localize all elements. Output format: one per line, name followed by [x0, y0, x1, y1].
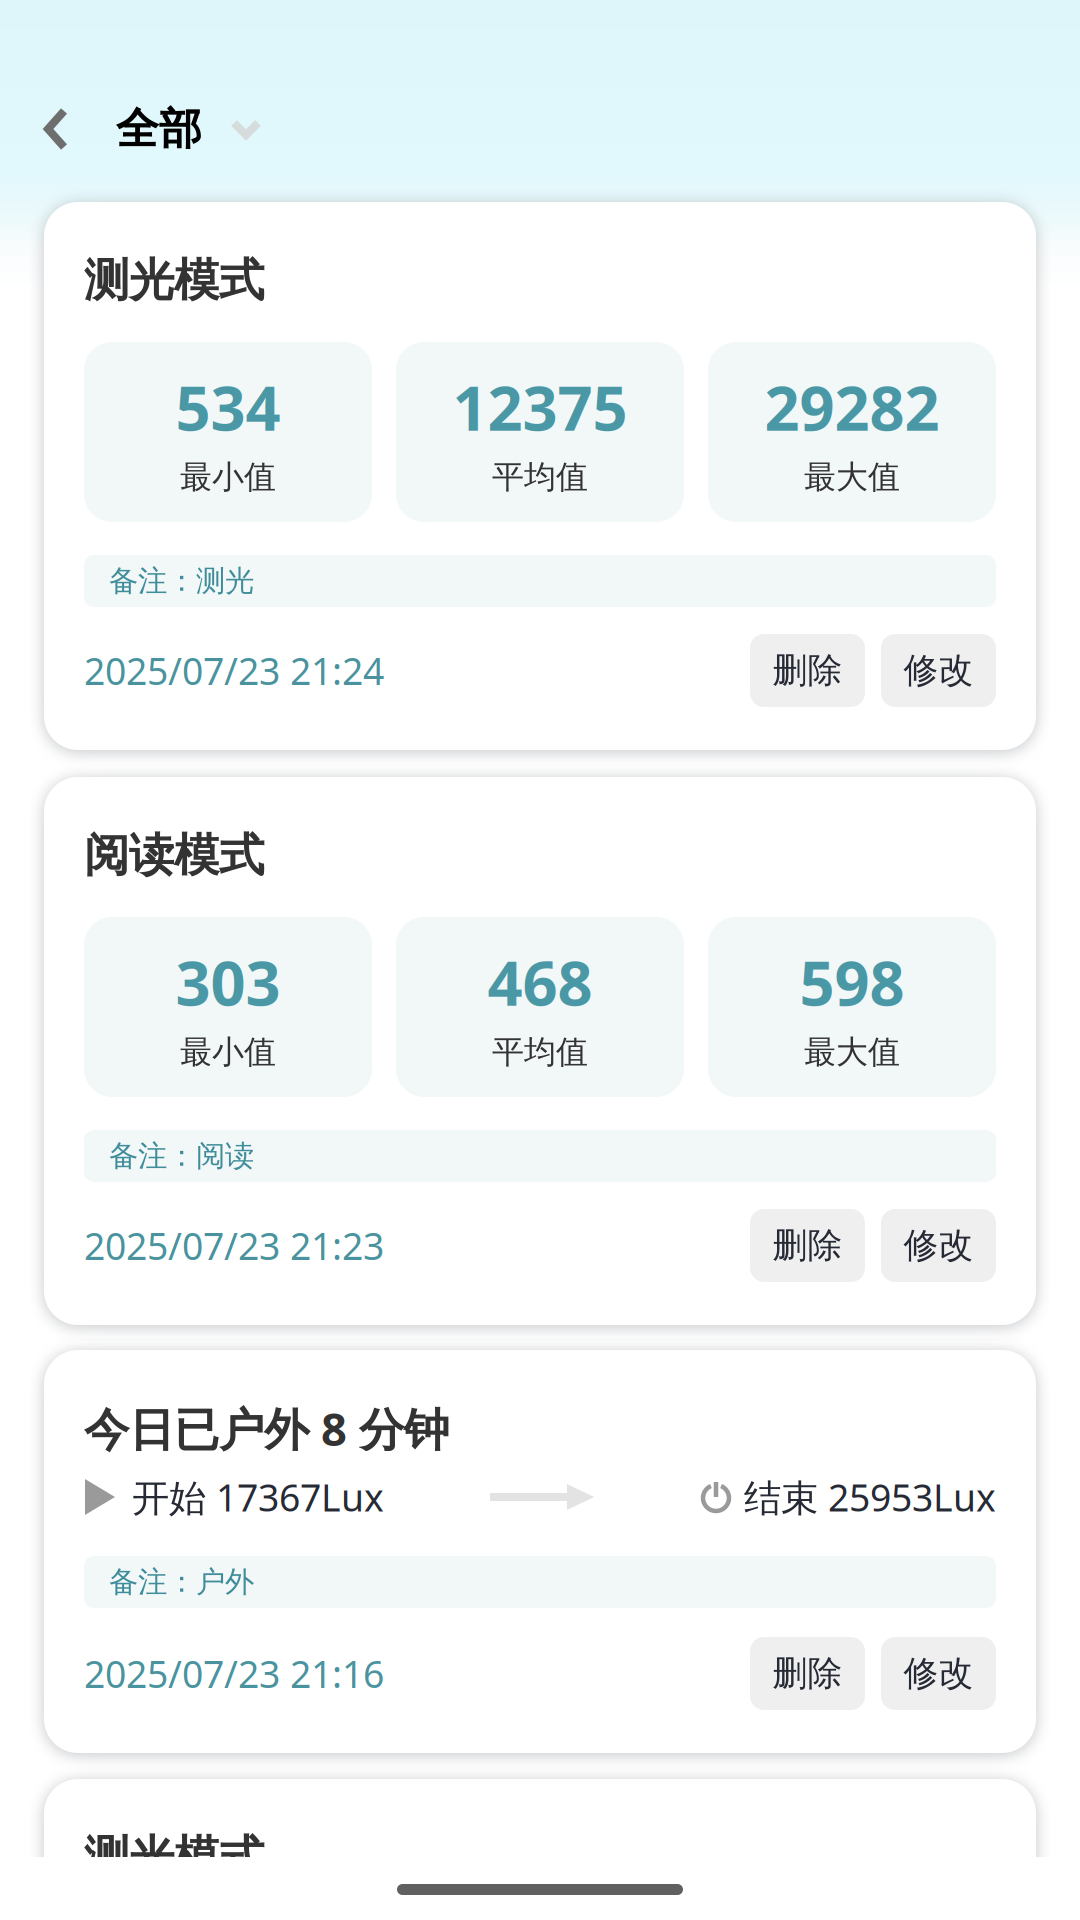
button[interactable]: 全部	[116, 81, 262, 177]
button[interactable]: 删除	[750, 634, 865, 707]
staticText: 最小值	[180, 1032, 276, 1072]
staticText: 534	[175, 366, 280, 448]
staticText: 备注：户外	[109, 1564, 254, 1600]
staticText: 结束 25953Lux	[744, 1472, 996, 1522]
staticText: 29282	[764, 366, 939, 448]
staticText: 468	[487, 941, 592, 1023]
staticText: 今日已户外 8 分钟	[84, 1398, 449, 1459]
staticText: 最大值	[804, 1032, 900, 1072]
staticText: 删除	[772, 1652, 842, 1695]
staticText: 2025/07/23 21:24	[84, 646, 384, 695]
staticText: 全部	[116, 103, 202, 155]
staticText: 删除	[772, 649, 842, 692]
staticText: 303	[175, 941, 280, 1023]
button[interactable]: 修改	[881, 1637, 996, 1710]
staticText: 598	[799, 941, 904, 1023]
button[interactable]: 删除	[750, 1209, 865, 1282]
staticText: 阅读模式	[84, 828, 264, 883]
staticText: 备注：测光	[109, 563, 254, 599]
button[interactable]: Back	[44, 81, 116, 177]
staticText: 平均值	[492, 457, 588, 497]
button[interactable]: 修改	[881, 1209, 996, 1282]
staticText: 测光模式	[84, 1830, 264, 1885]
staticText: 最大值	[804, 457, 900, 497]
staticText: 测光模式	[84, 253, 264, 308]
staticText: 开始 17367Lux	[132, 1472, 384, 1522]
staticText: 修改	[903, 1224, 973, 1267]
staticText: 修改	[903, 1652, 973, 1695]
staticText: 平均值	[492, 1032, 588, 1072]
staticText: 最小值	[180, 457, 276, 497]
staticText: 备注：阅读	[109, 1138, 254, 1174]
staticText: 删除	[772, 1224, 842, 1267]
staticText: 修改	[903, 649, 973, 692]
staticText: 2025/07/23 21:23	[84, 1221, 384, 1270]
button[interactable]: 删除	[750, 1637, 865, 1710]
button[interactable]: 修改	[881, 634, 996, 707]
staticText: 2025/07/23 21:16	[84, 1649, 384, 1698]
staticText: 12375	[452, 366, 627, 448]
